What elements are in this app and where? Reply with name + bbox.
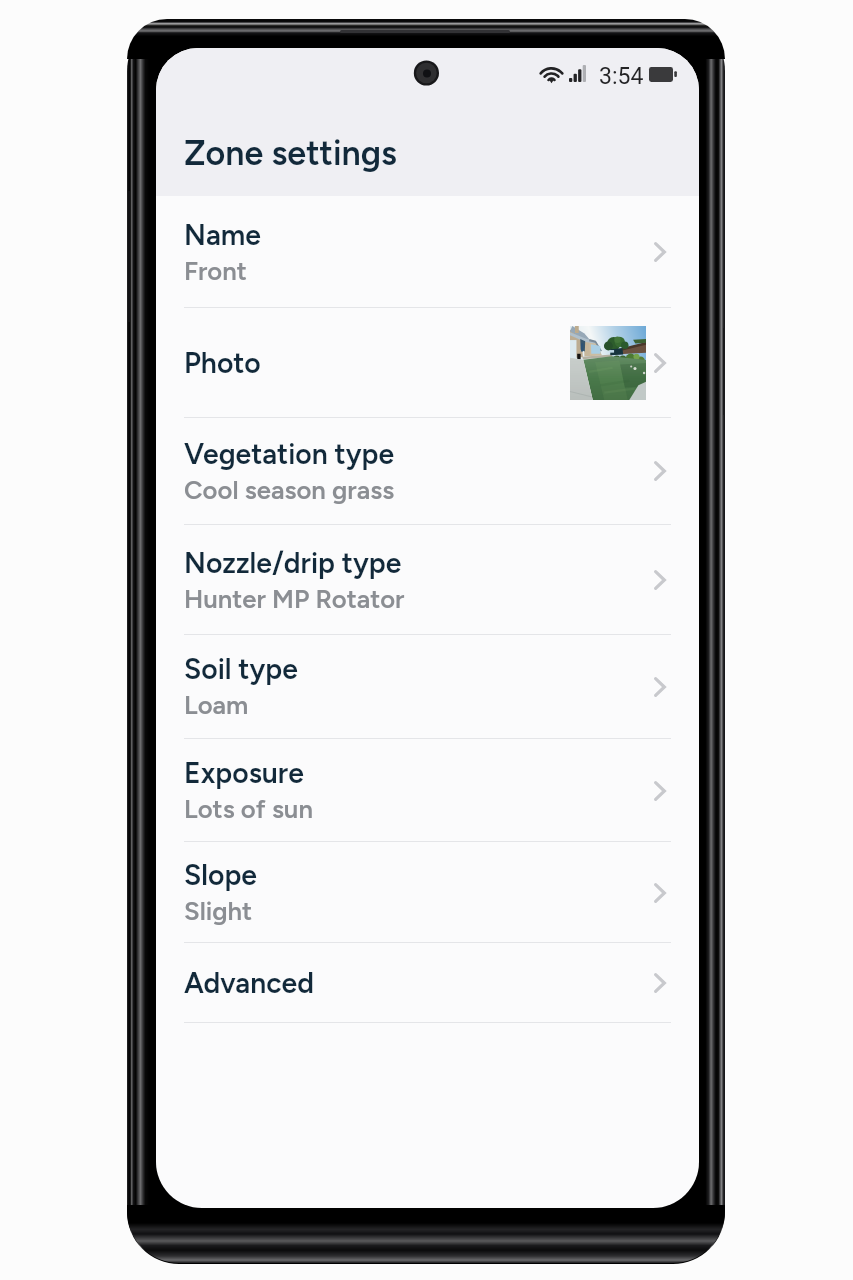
staticText: Vegetation type bbox=[184, 437, 395, 471]
staticText: 3:54 bbox=[599, 63, 644, 90]
staticText: Slight bbox=[184, 896, 253, 927]
staticText: Exposure bbox=[184, 756, 304, 790]
button[interactable]: Photo bbox=[156, 308, 699, 418]
staticText: Lots of sun bbox=[184, 794, 313, 825]
staticText: Name bbox=[184, 218, 261, 252]
button[interactable]: Vegetation type bbox=[156, 417, 699, 525]
button[interactable]: Advanced bbox=[156, 943, 699, 1023]
staticText: Front bbox=[184, 256, 247, 287]
staticText: Nozzle/drip type bbox=[184, 546, 402, 580]
button[interactable]: Slope bbox=[156, 842, 699, 943]
button[interactable]: Name bbox=[156, 196, 699, 308]
staticText: Loam bbox=[184, 690, 249, 721]
button[interactable]: Soil type bbox=[156, 634, 699, 739]
staticText: Soil type bbox=[184, 652, 298, 686]
staticText: Hunter MP Rotator bbox=[184, 584, 405, 615]
staticText: Zone settings bbox=[184, 133, 397, 174]
staticText: Photo bbox=[184, 346, 261, 380]
staticText: Slope bbox=[184, 858, 257, 892]
staticText: Advanced bbox=[184, 966, 314, 1000]
staticText: Cool season grass bbox=[184, 475, 395, 506]
button[interactable]: Exposure bbox=[156, 739, 699, 842]
button[interactable]: Nozzle/drip type bbox=[156, 525, 699, 635]
